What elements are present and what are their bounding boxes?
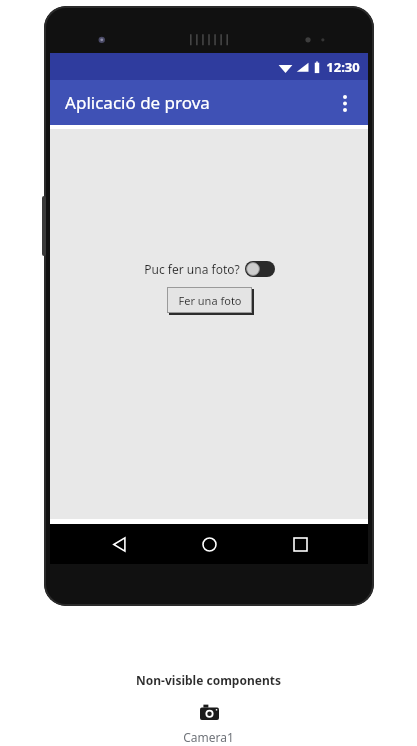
button[interactable]: Recent apps [278, 524, 322, 564]
staticText: Non-visible components [136, 672, 281, 688]
button[interactable]: Back [97, 524, 141, 564]
staticText: Fer una foto [178, 293, 242, 308]
button[interactable]: Puc fer una foto? [142, 259, 277, 279]
button[interactable]: Camera1 component [196, 699, 222, 725]
staticText: Puc fer una foto? [144, 261, 240, 277]
staticText: Camera1 [183, 729, 234, 745]
staticText: Aplicació de prova [65, 91, 210, 114]
button[interactable]: Camera permission toggle [245, 261, 275, 277]
button[interactable]: Fer una foto [167, 287, 252, 313]
staticText: 12:30 [326, 58, 360, 76]
button[interactable]: Home [187, 524, 231, 564]
button[interactable]: More options [328, 86, 362, 120]
